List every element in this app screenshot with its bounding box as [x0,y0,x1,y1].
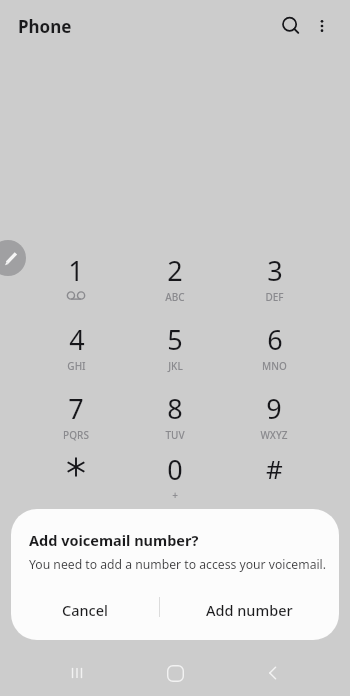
staticText: Add voicemail number? [29,530,199,550]
button[interactable]: Recents [59,655,95,691]
button[interactable] [36,451,116,509]
button[interactable]: Cancel [11,593,159,627]
staticText: WXYZ [260,428,288,442]
staticText: DEF [265,290,284,304]
button[interactable]: # [234,451,314,509]
staticText: # [266,451,283,486]
button[interactable]: Back [255,655,291,691]
button[interactable]: 3 [234,252,314,310]
staticText: 1 [68,252,84,289]
button[interactable]: 8 [135,390,215,448]
button[interactable]: 0 [135,451,215,509]
staticText: 0 [167,451,183,488]
staticText: GHI [67,359,86,373]
button[interactable]: 4 [36,321,116,379]
staticText: 6 [267,321,283,358]
staticText: Add number [206,600,293,620]
staticText: ABC [165,290,185,304]
button[interactable]: Add number [159,593,339,627]
button[interactable]: Search [275,10,307,42]
button[interactable]: 5 [135,321,215,379]
staticText: 5 [167,321,183,358]
staticText: You need to add a number to access your … [29,556,327,573]
button[interactable]: 9 [234,390,314,448]
staticText: 4 [69,321,85,358]
staticText: 3 [267,252,283,289]
staticText: 8 [167,390,183,427]
button[interactable]: 7 [36,390,116,448]
staticText: + [172,488,178,502]
button[interactable]: Edit number [0,240,26,276]
staticText: JKL [168,359,183,373]
staticText: Phone [18,15,72,38]
staticText: 7 [68,390,84,427]
staticText: Cancel [62,600,108,620]
staticText: PQRS [63,428,89,442]
staticText: MNO [262,359,287,373]
staticText: 2 [167,252,183,289]
button[interactable]: More options [308,12,336,40]
staticText: TUV [165,428,185,442]
button[interactable]: 2 [135,252,215,310]
staticText: 9 [266,390,282,427]
button[interactable]: 6 [234,321,314,379]
button[interactable]: 1 [36,252,116,310]
button[interactable]: Home [157,655,193,691]
